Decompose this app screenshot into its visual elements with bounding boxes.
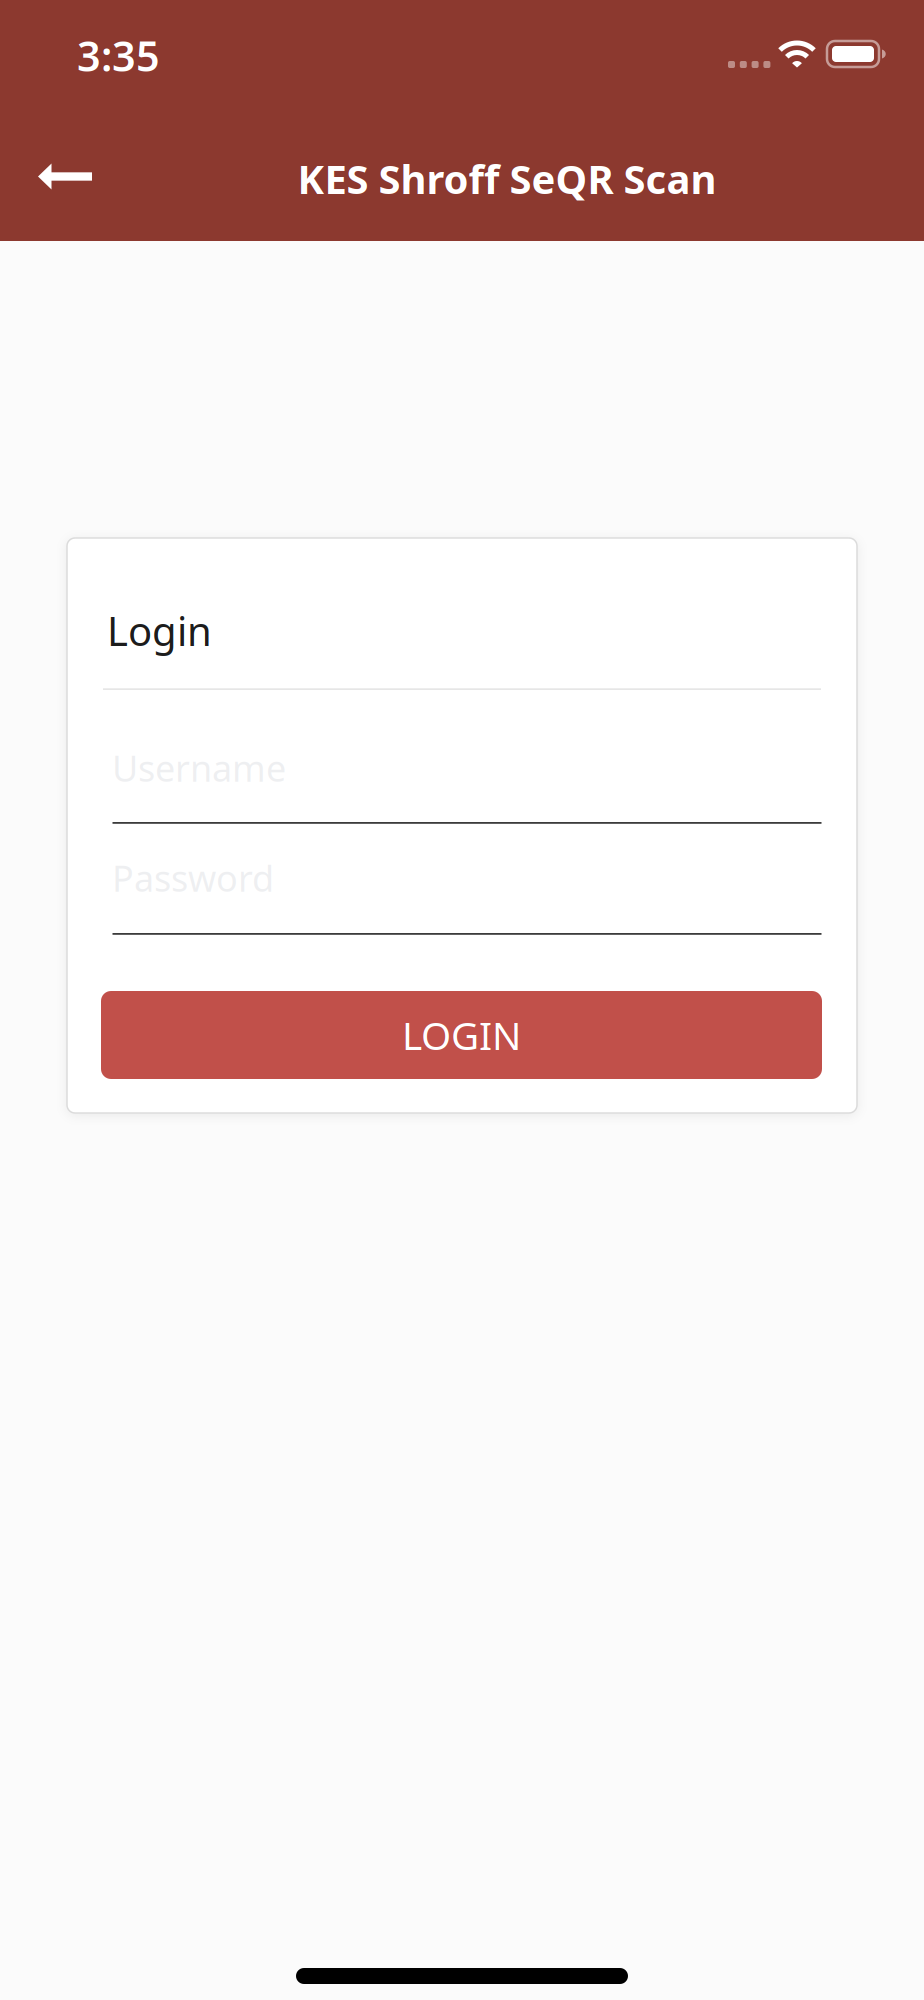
button[interactable]: LOGIN bbox=[101, 991, 822, 1079]
button[interactable]: Back bbox=[0, 142, 122, 211]
staticText: KES Shroff SeQR Scan bbox=[297, 152, 716, 205]
staticText: Username bbox=[112, 744, 286, 792]
staticText: LOGIN bbox=[402, 1009, 521, 1061]
staticText: Login bbox=[107, 604, 212, 657]
staticText: 3:35 bbox=[77, 28, 160, 83]
staticText: Password bbox=[112, 854, 274, 902]
